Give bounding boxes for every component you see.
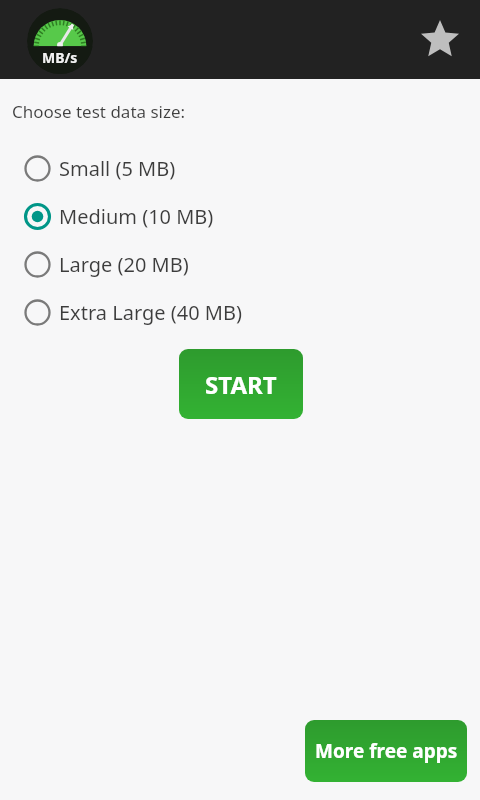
staticText: Medium (10 MB) — [59, 203, 214, 230]
button[interactable]: Rate this app — [414, 14, 466, 66]
button[interactable]: Small (5 MB) — [0, 144, 480, 192]
staticText: Choose test data size: — [12, 100, 186, 123]
button[interactable]: Medium (10 MB) — [0, 192, 480, 240]
staticText: Extra Large (40 MB) — [59, 299, 242, 326]
staticText: Small (5 MB) — [59, 155, 176, 182]
staticText: MB/s — [42, 48, 78, 67]
button[interactable]: START — [179, 349, 303, 419]
button[interactable]: Large (20 MB) — [0, 240, 480, 288]
button[interactable]: App icon — [27, 8, 93, 74]
button[interactable]: Extra Large (40 MB) — [0, 288, 480, 336]
staticText: More free apps — [315, 738, 458, 764]
staticText: START — [205, 368, 277, 401]
staticText: Large (20 MB) — [59, 251, 189, 278]
button[interactable]: More free apps — [305, 720, 467, 782]
